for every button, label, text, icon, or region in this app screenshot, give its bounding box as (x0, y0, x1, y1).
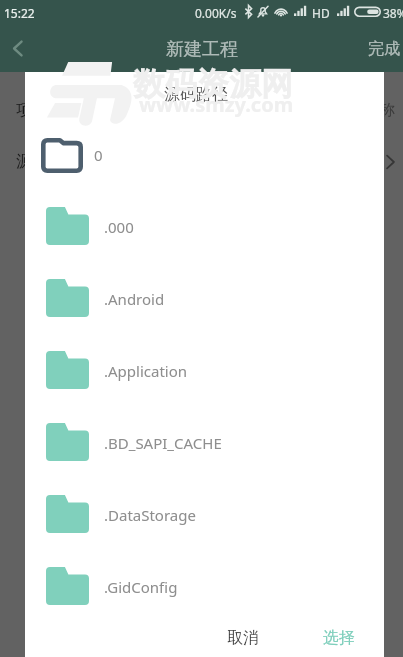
staticText: 源码路径 (16, 152, 80, 172)
staticText: 输入工程名称 (305, 101, 395, 120)
staticText: .Android (104, 289, 165, 309)
button[interactable]: .GidConfig (25, 551, 384, 623)
button[interactable]: .Application (25, 335, 384, 407)
staticText: .BD_SAPI_CACHE (104, 433, 222, 453)
button[interactable]: 选择 (310, 622, 368, 654)
staticText: 38% (383, 5, 403, 21)
staticText: 取消 (227, 628, 259, 648)
button[interactable]: .000 (25, 191, 384, 263)
staticText: www.smzy.com (139, 91, 294, 118)
staticText: HD (312, 5, 330, 21)
staticText: 数码资源网 (133, 64, 293, 104)
button[interactable]: .BD_SAPI_CACHE (25, 407, 384, 479)
button[interactable]: .Android (25, 263, 384, 335)
button[interactable]: 源码路径 (0, 136, 403, 188)
staticText: 完成 (368, 39, 400, 59)
staticText: .GidConfig (104, 577, 178, 597)
button[interactable]: 取消 (214, 622, 272, 654)
staticText: 0 (94, 145, 103, 165)
staticText: 源码路径 (164, 85, 228, 105)
staticText: 0.00K/s (195, 5, 237, 21)
staticText: .DataStorage (104, 505, 196, 525)
button[interactable]: .DataStorage (25, 479, 384, 551)
staticText: .000 (104, 217, 134, 237)
staticText: 选择 (323, 628, 355, 648)
button[interactable]: 完成 (354, 24, 403, 72)
staticText: 新建工程 (166, 38, 238, 61)
button[interactable]: 0 (25, 119, 384, 191)
staticText: 项目名称 (16, 100, 80, 120)
button[interactable]: Back (0, 24, 37, 72)
staticText: .Application (104, 361, 188, 381)
button[interactable]: 项目名称 (0, 84, 403, 136)
staticText: 15:22 (4, 5, 35, 21)
